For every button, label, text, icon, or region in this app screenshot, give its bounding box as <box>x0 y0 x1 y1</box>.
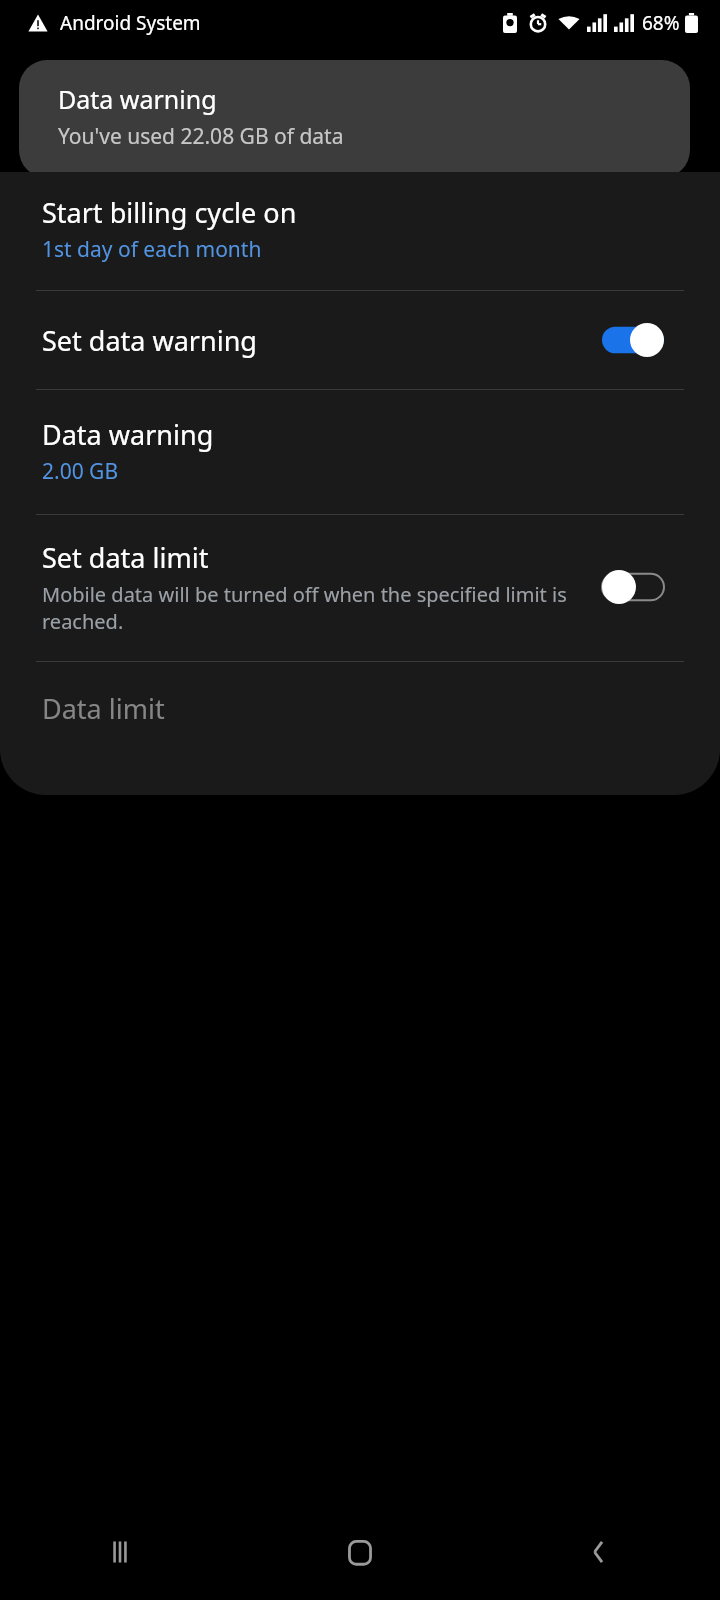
button[interactable]: Data warning <box>0 390 720 514</box>
staticText: Set data limit <box>42 539 209 576</box>
staticText: Android System <box>60 10 201 36</box>
button[interactable]: Set data limit <box>0 515 720 661</box>
staticText: 68% <box>642 10 680 36</box>
staticText: Set data warning <box>42 322 602 359</box>
button[interactable]: Data limit <box>0 662 720 772</box>
staticText: 2.00 GB <box>42 457 119 486</box>
button[interactable]: Toggle on <box>602 323 664 357</box>
button[interactable]: Recents <box>0 1504 240 1600</box>
button[interactable]: Home <box>240 1504 480 1600</box>
staticText: Data limit <box>42 690 165 727</box>
staticText: 1st day of each month <box>42 235 262 264</box>
staticText: Start billing cycle on <box>42 194 297 231</box>
button[interactable]: Back <box>480 1504 720 1600</box>
button[interactable]: Data warning <box>19 60 690 178</box>
staticText: Mobile data will be turned off when the … <box>42 581 584 635</box>
staticText: Data warning <box>42 416 214 453</box>
button[interactable]: Start billing cycle on <box>0 172 720 290</box>
staticText: Data warning <box>58 82 217 116</box>
button[interactable]: Toggle off <box>602 570 664 604</box>
button[interactable]: Set data warning <box>0 291 720 389</box>
staticText: You've used 22.08 GB of data <box>58 122 344 151</box>
